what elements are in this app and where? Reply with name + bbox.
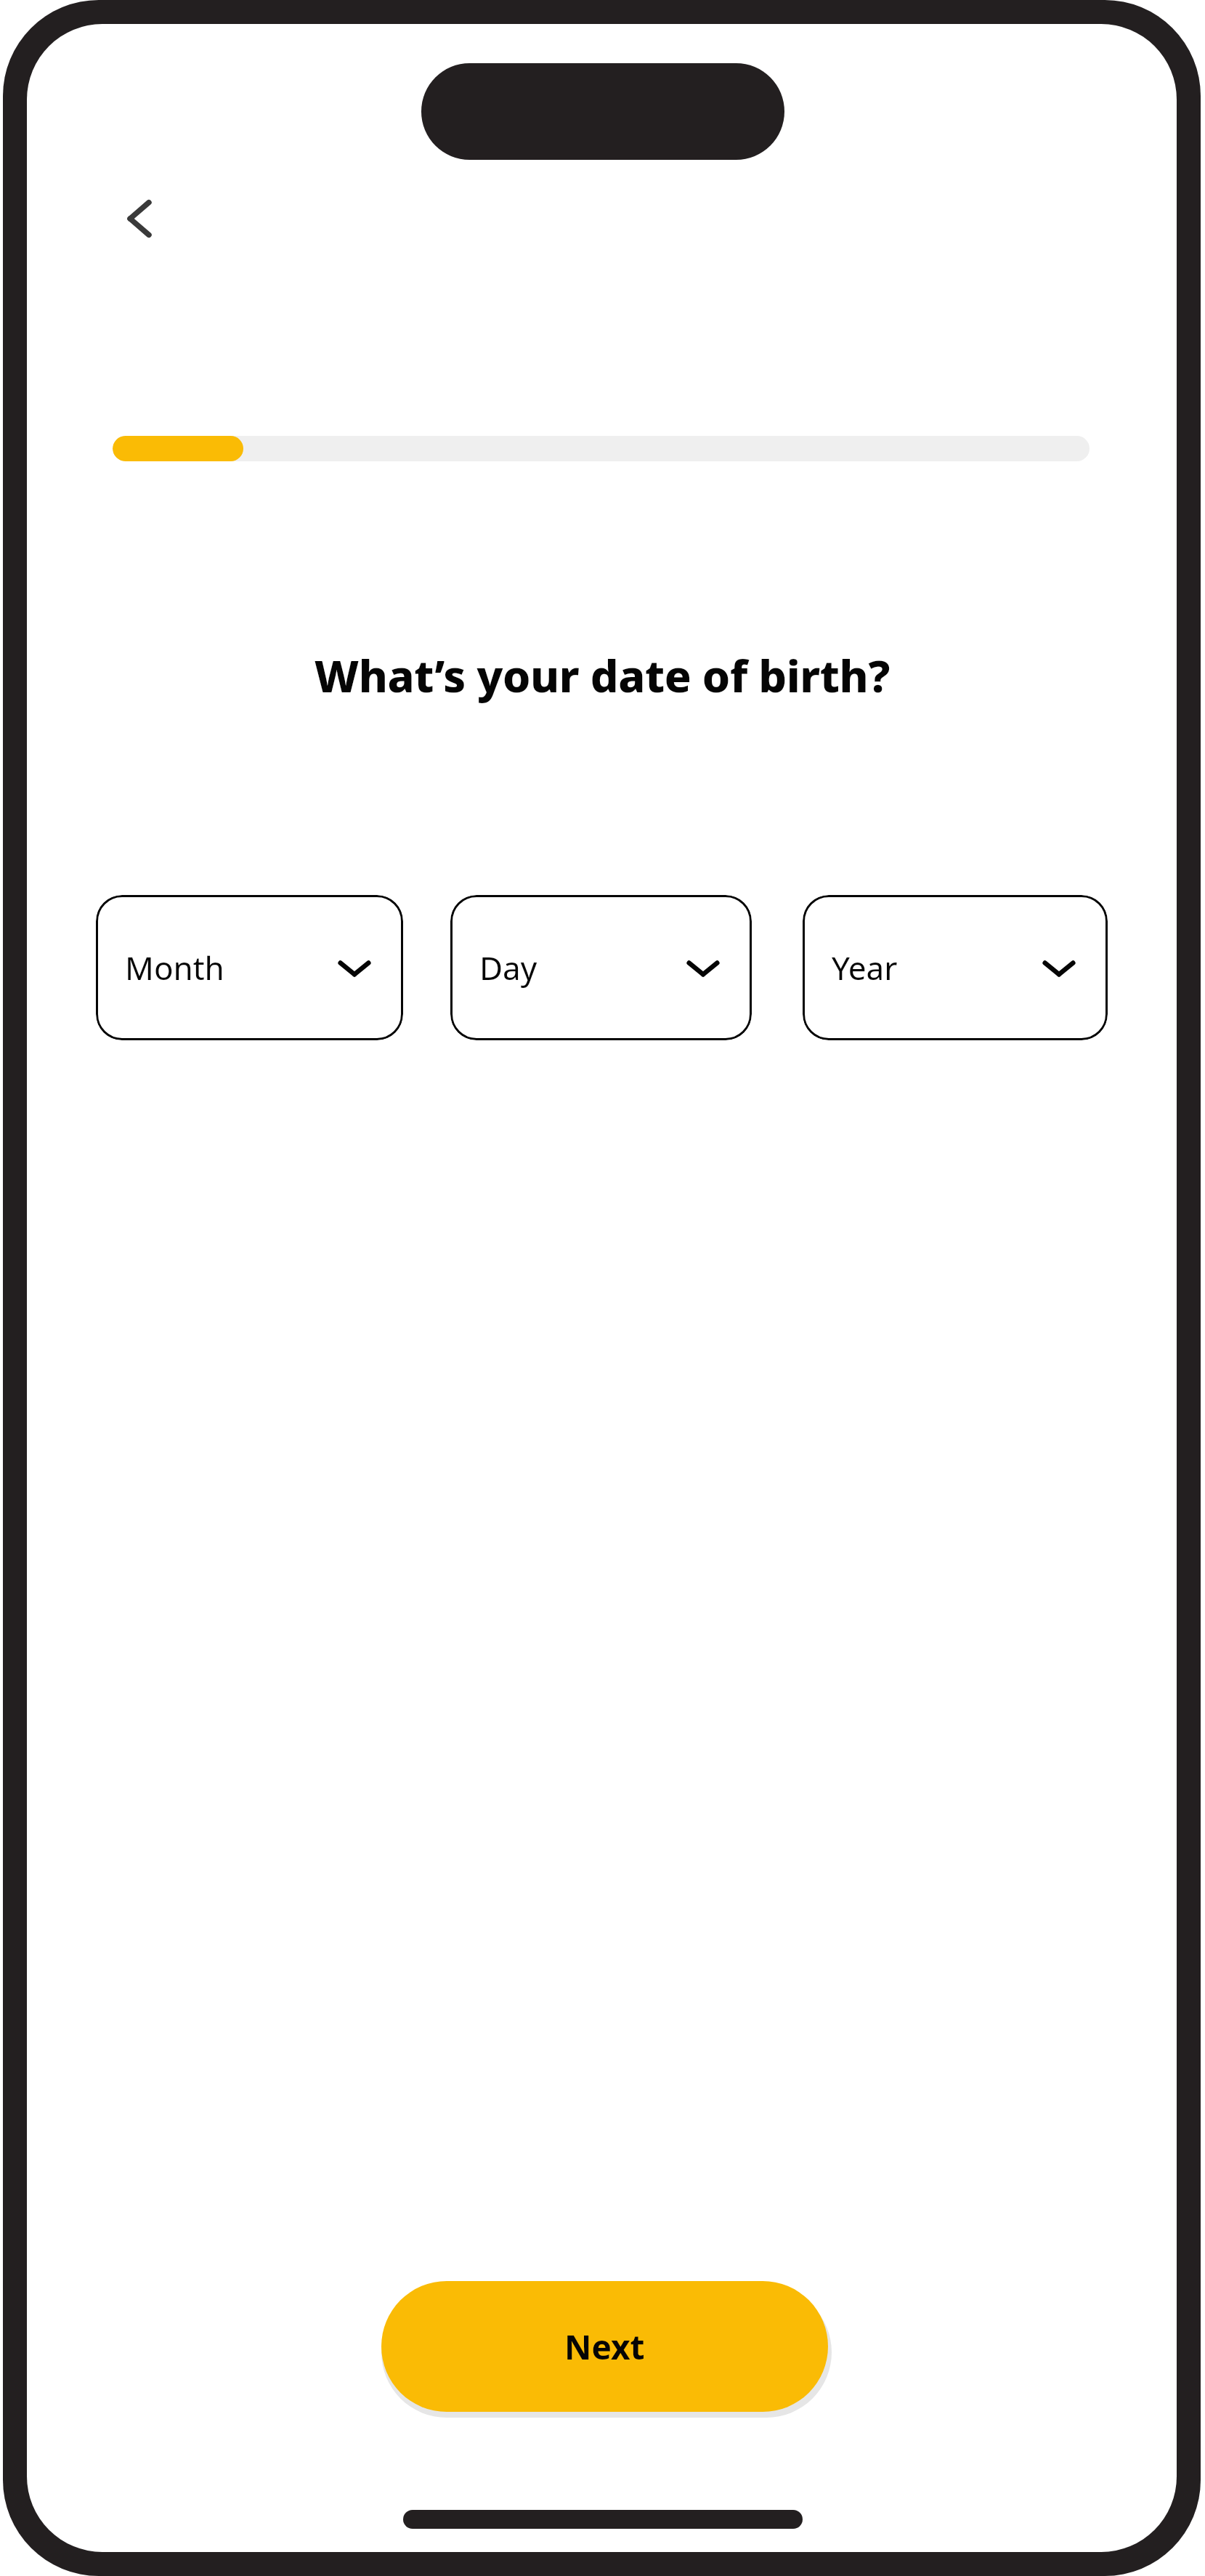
staticText: What’s your date of birth? xyxy=(315,645,890,705)
staticText: Month xyxy=(125,946,224,989)
button[interactable]: Next xyxy=(381,2281,828,2412)
button[interactable]: Day xyxy=(450,895,752,1040)
button[interactable]: Back xyxy=(98,178,179,259)
staticText: Next xyxy=(564,2324,645,2370)
staticText: Day xyxy=(479,946,537,989)
button[interactable]: Month xyxy=(96,895,403,1040)
staticText: Year xyxy=(832,946,898,989)
button[interactable]: Year xyxy=(803,895,1108,1040)
